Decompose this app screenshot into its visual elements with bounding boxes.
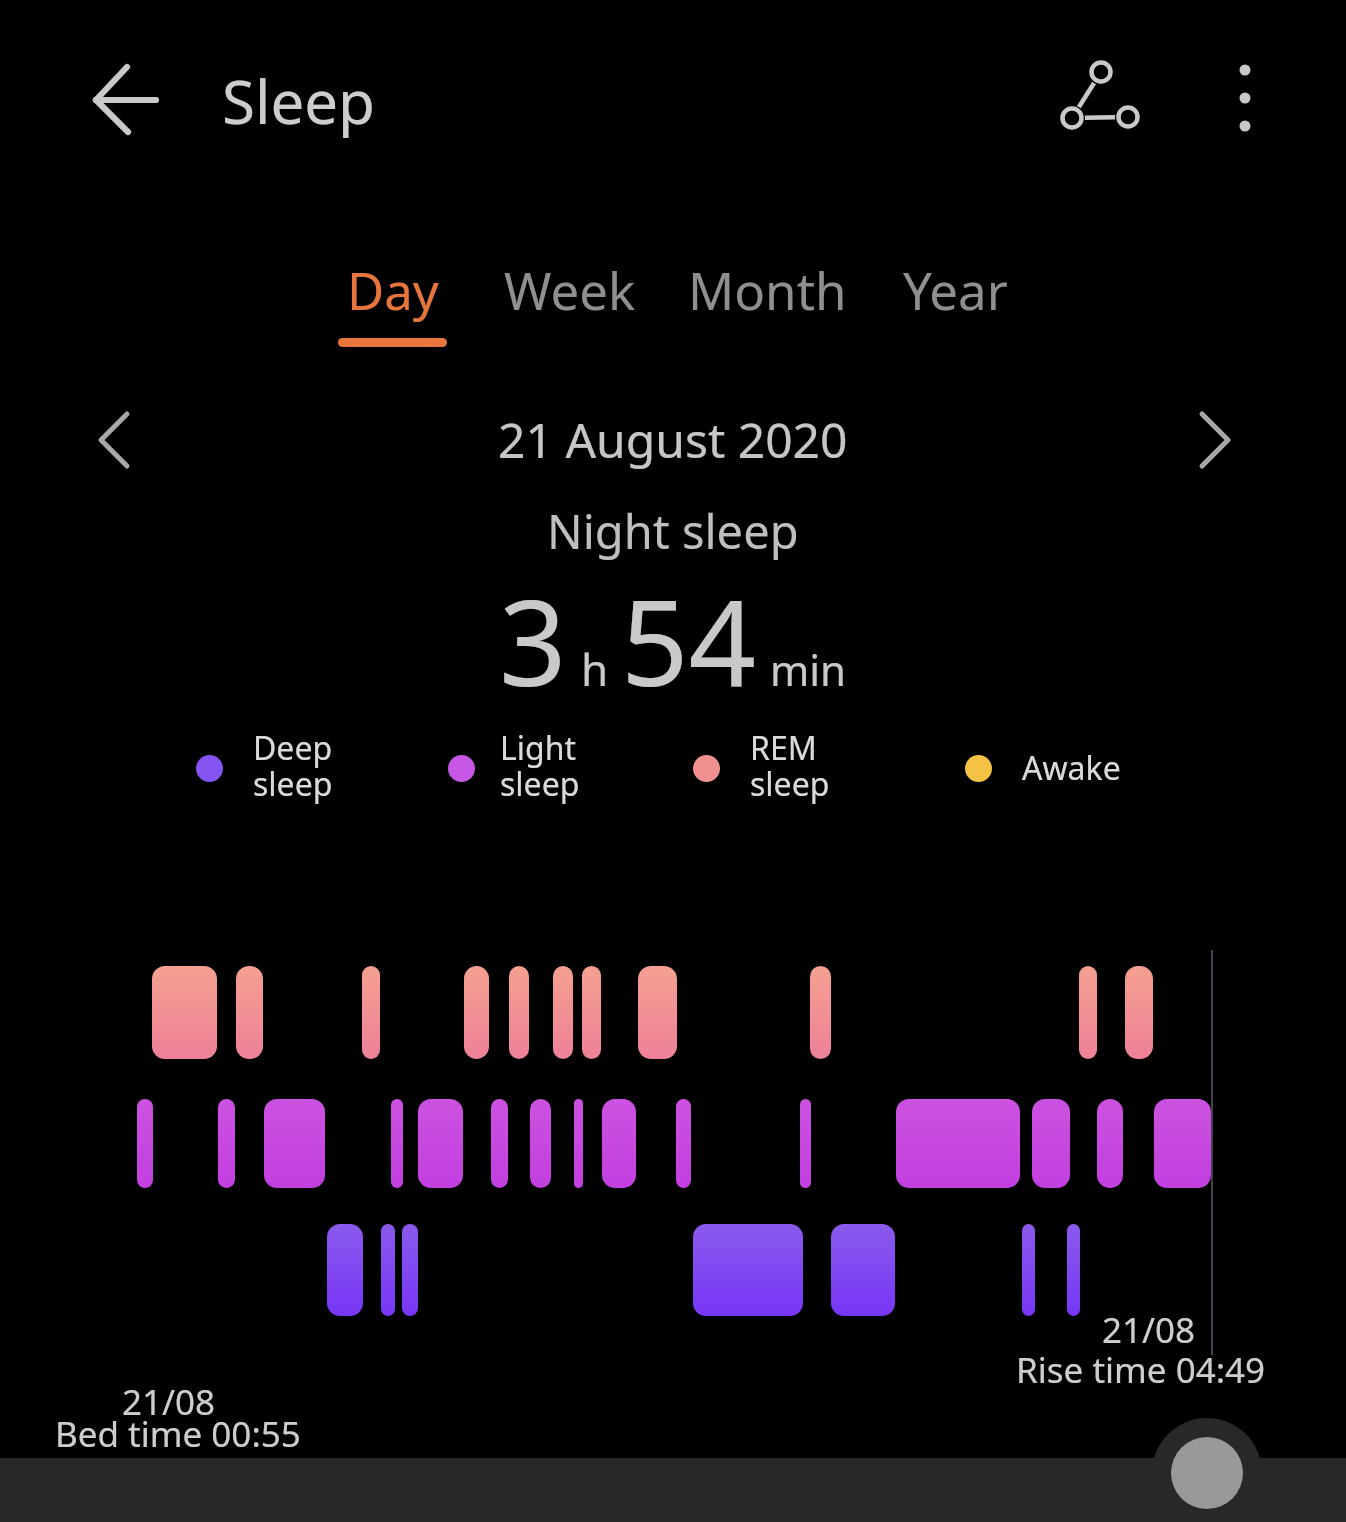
button[interactable]: Month <box>672 254 862 324</box>
staticText: Week <box>504 255 636 324</box>
button[interactable] <box>1179 398 1251 482</box>
staticText: Month <box>688 255 847 324</box>
button[interactable]: Week <box>490 254 650 324</box>
staticText: 21 August 2020 <box>498 407 848 472</box>
button[interactable] <box>1171 1437 1243 1509</box>
staticText: Year <box>903 255 1008 324</box>
staticText: Rise time 04:49 <box>1016 1346 1266 1394</box>
staticText: min <box>770 641 847 698</box>
button[interactable]: Year <box>888 254 1023 324</box>
staticText: Day <box>347 255 439 324</box>
button[interactable] <box>80 52 170 140</box>
button[interactable] <box>78 398 150 482</box>
staticText: Awake <box>1022 746 1121 790</box>
staticText: Bed time 00:55 <box>55 1410 301 1458</box>
staticText: Light sleep <box>500 726 580 806</box>
staticText: 21/08 <box>122 1378 216 1426</box>
staticText: REM sleep <box>750 726 830 806</box>
staticText: Night sleep <box>547 499 799 563</box>
button[interactable] <box>1040 40 1160 156</box>
button[interactable]: Day <box>330 254 455 324</box>
staticText: Deep sleep <box>253 726 333 806</box>
button[interactable] <box>1205 50 1285 146</box>
staticText: Sleep <box>222 60 375 142</box>
staticText: 3 <box>499 560 567 721</box>
staticText: h <box>581 639 609 699</box>
staticText: 54 <box>621 560 756 721</box>
staticText: 21/08 <box>1102 1306 1196 1354</box>
